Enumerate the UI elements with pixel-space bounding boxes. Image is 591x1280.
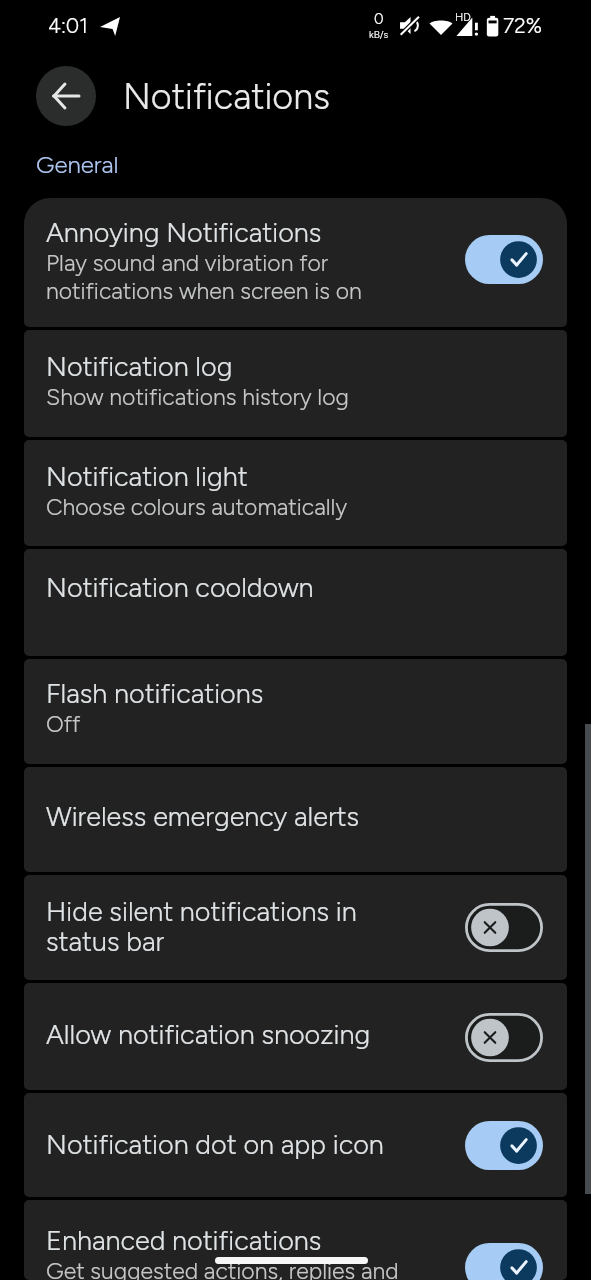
staticText: Wireless emergency alerts bbox=[46, 800, 360, 832]
staticText: 72% bbox=[503, 13, 542, 38]
button[interactable]: Hide silent notifications in status bar bbox=[24, 875, 567, 980]
button[interactable]: Switch on bbox=[465, 235, 543, 284]
button[interactable]: Notification log bbox=[24, 330, 567, 437]
staticText: Notification light bbox=[46, 460, 248, 492]
staticText: General bbox=[36, 150, 119, 179]
button[interactable]: Switch on bbox=[465, 1121, 543, 1170]
button[interactable]: Annoying Notifications bbox=[24, 198, 567, 327]
staticText: Notification cooldown bbox=[46, 571, 314, 603]
staticText: kB/s bbox=[369, 28, 389, 40]
staticText: Notification log bbox=[46, 350, 233, 382]
button[interactable]: Notification dot on app icon bbox=[24, 1093, 567, 1197]
staticText: Play sound and vibration for notificatio… bbox=[46, 249, 362, 305]
button[interactable]: Back bbox=[36, 66, 96, 126]
staticText: Notification dot on app icon bbox=[46, 1128, 384, 1160]
staticText: HD bbox=[455, 11, 471, 24]
button[interactable]: Enhanced notifications bbox=[24, 1200, 567, 1280]
button[interactable]: Switch off bbox=[465, 903, 543, 952]
button[interactable]: Allow notification snoozing bbox=[24, 983, 567, 1090]
staticText: Off bbox=[46, 710, 81, 738]
staticText: 4:01 bbox=[48, 13, 88, 38]
staticText: Hide silent notifications in status bar bbox=[46, 895, 357, 958]
button[interactable]: Switch on bbox=[465, 1243, 543, 1280]
staticText: Get suggested actions, replies and bbox=[46, 1257, 399, 1280]
staticText: Flash notifications bbox=[46, 677, 264, 709]
button[interactable]: Notification light bbox=[24, 440, 567, 546]
staticText: Choose colours automatically bbox=[46, 493, 348, 521]
staticText: Show notifications history log bbox=[46, 383, 349, 411]
staticText: 0 bbox=[374, 10, 384, 28]
staticText: Notifications bbox=[123, 75, 330, 118]
button[interactable]: Notification cooldown bbox=[24, 549, 567, 656]
staticText: Annoying Notifications bbox=[46, 216, 322, 248]
button[interactable]: Switch off bbox=[465, 1013, 543, 1062]
staticText: Enhanced notifications bbox=[46, 1224, 322, 1256]
staticText: Allow notification snoozing bbox=[46, 1018, 371, 1050]
button[interactable]: Wireless emergency alerts bbox=[24, 767, 567, 872]
button[interactable]: Flash notifications bbox=[24, 659, 567, 764]
